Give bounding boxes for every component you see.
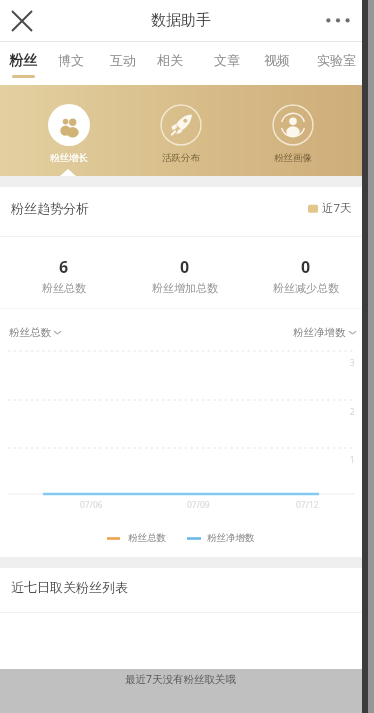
button[interactable]: 实验室 — [312, 43, 360, 85]
button[interactable]: 0 — [245, 252, 366, 298]
staticText: 6 — [59, 256, 69, 278]
staticText: 最近7天没有粉丝取关哦 — [125, 672, 237, 686]
staticText: 粉丝总数 — [42, 281, 86, 295]
staticText: 视频 — [264, 52, 290, 68]
button[interactable]: 粉丝净增数 — [293, 326, 356, 339]
staticText: 粉丝 — [9, 52, 37, 70]
staticText: 07/09 — [187, 499, 210, 511]
staticText: 粉丝增长 — [50, 152, 88, 164]
staticText: 粉丝净增数 — [293, 326, 346, 339]
staticText: 粉丝总数 — [9, 326, 51, 339]
staticText: 互动 — [110, 52, 136, 68]
button[interactable]: 粉丝总数 — [9, 326, 61, 339]
button[interactable]: 0 — [124, 252, 245, 298]
staticText: 粉丝画像 — [274, 152, 312, 164]
staticText: 07/06 — [80, 499, 103, 511]
button[interactable]: 相关 — [151, 43, 189, 85]
button[interactable]: 近7天 — [308, 200, 352, 216]
staticText: 3 — [350, 357, 355, 368]
staticText: 粉丝趋势分析 — [11, 200, 89, 216]
staticText: 粉丝净增数 — [207, 532, 255, 544]
button[interactable]: 视频 — [258, 43, 296, 85]
staticText: 博文 — [58, 52, 84, 68]
staticText: 粉丝增加总数 — [152, 281, 218, 295]
button[interactable]: 粉丝增长 — [13, 85, 125, 176]
staticText: 0 — [301, 256, 311, 278]
staticText: 2 — [350, 406, 355, 417]
staticText: 数据助手 — [151, 11, 211, 30]
staticText: 粉丝总数 — [128, 532, 166, 544]
staticText: 相关 — [157, 52, 183, 68]
button[interactable]: 博文 — [52, 43, 90, 85]
button[interactable]: 互动 — [104, 43, 142, 85]
staticText: 文章 — [214, 52, 240, 68]
button[interactable]: Close — [5, 4, 39, 38]
staticText: 实验室 — [317, 52, 356, 68]
staticText: 0 — [180, 256, 190, 278]
staticText: 粉丝减少总数 — [273, 281, 339, 295]
button[interactable]: 粉丝画像 — [237, 85, 349, 176]
button[interactable]: 粉丝 — [4, 43, 42, 85]
button[interactable]: More options — [321, 4, 355, 38]
staticText: 活跃分布 — [162, 152, 200, 164]
button[interactable]: 文章 — [208, 43, 246, 85]
button[interactable]: 活跃分布 — [125, 85, 237, 176]
staticText: 近七日取关粉丝列表 — [11, 579, 128, 595]
button[interactable]: 6 — [4, 252, 124, 298]
staticText: 近7天 — [322, 200, 352, 216]
staticText: 1 — [350, 454, 355, 465]
staticText: 07/12 — [296, 499, 319, 511]
